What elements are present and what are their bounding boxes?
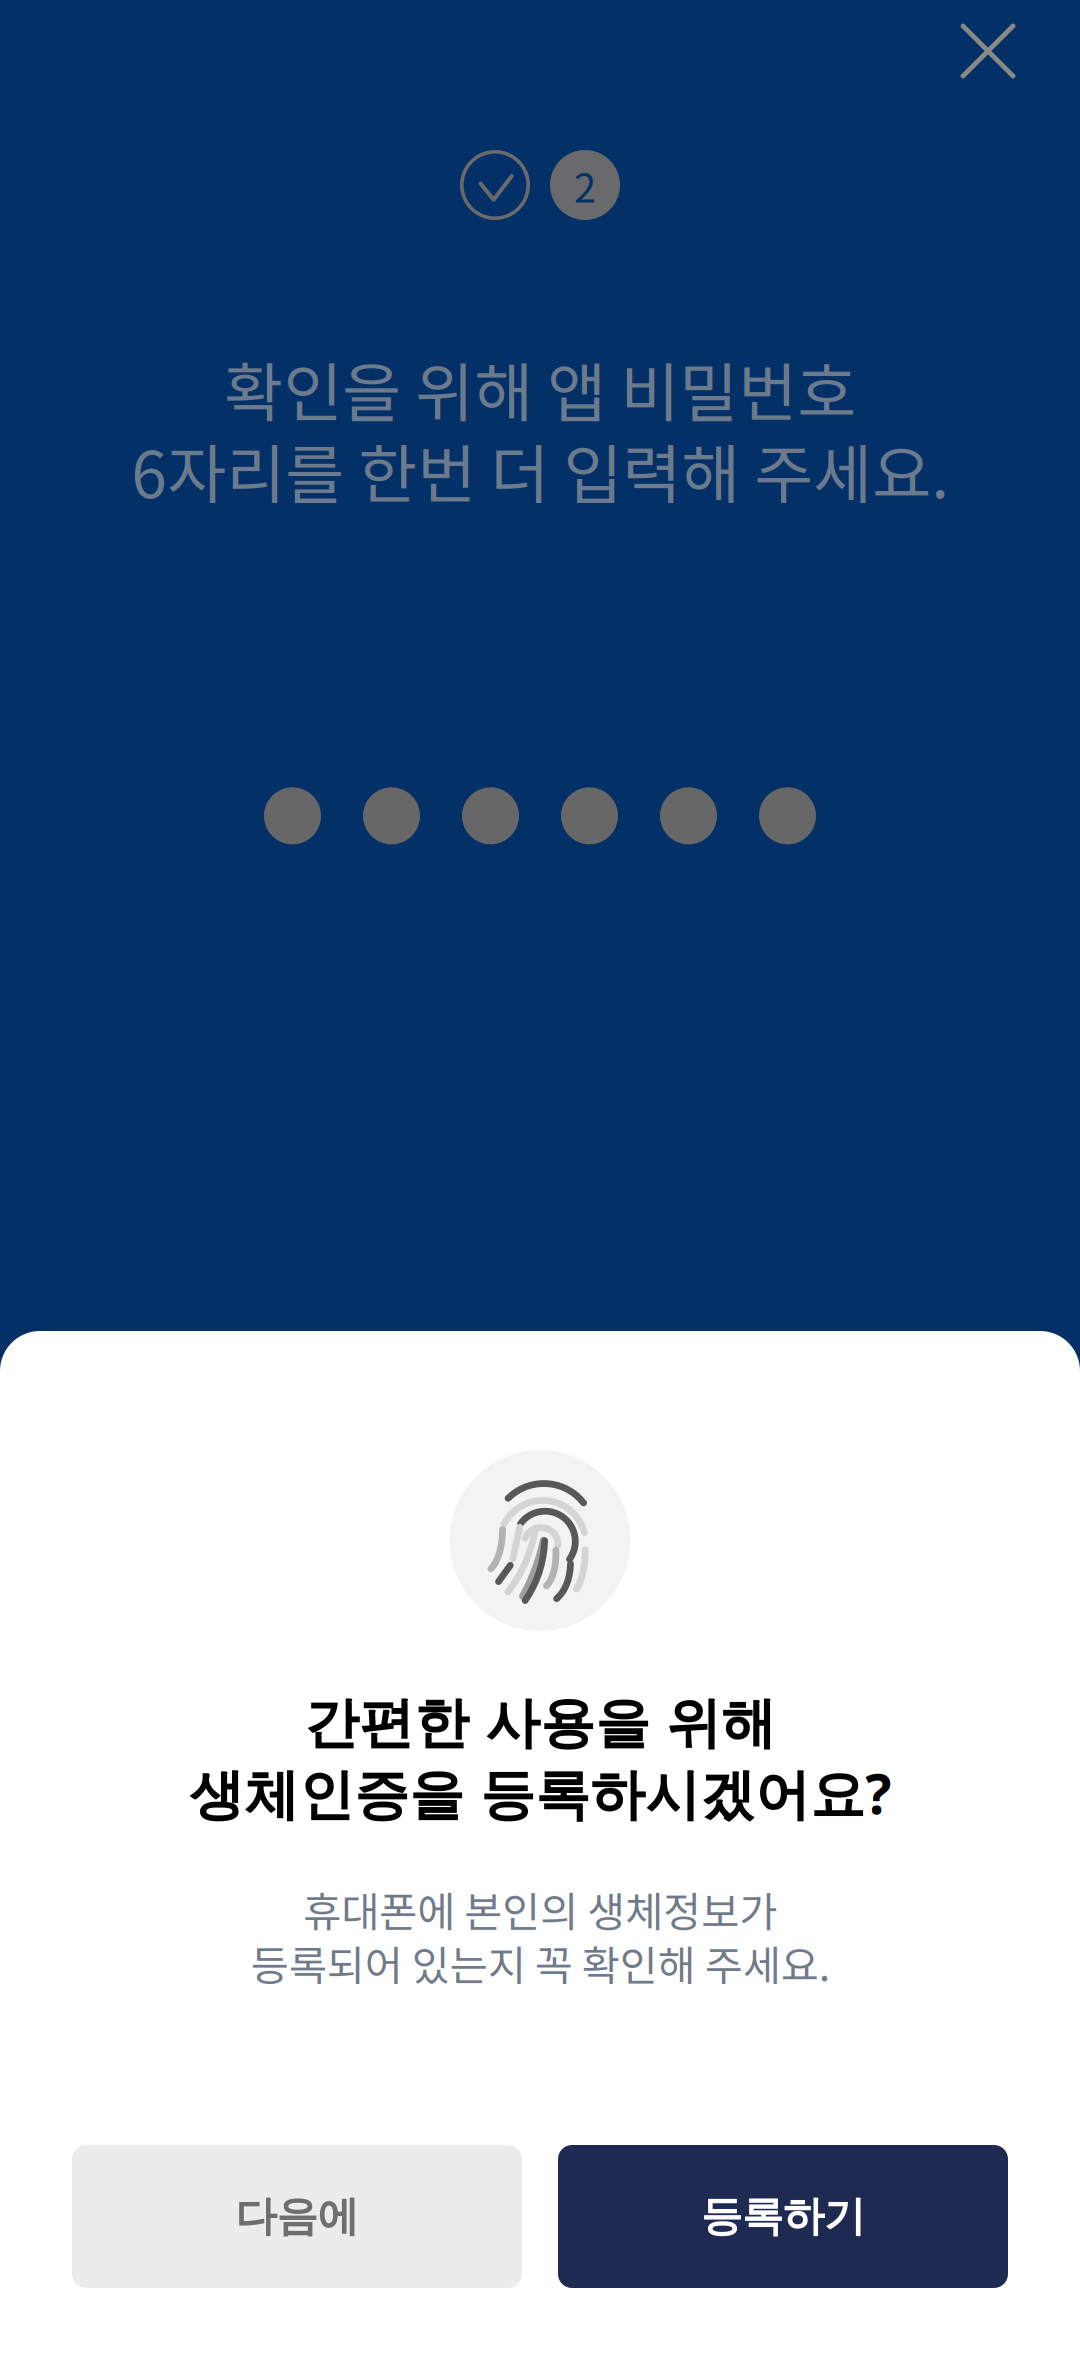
button[interactable]: 닫기 (936, 0, 1040, 103)
staticText: 다음에 (235, 2190, 358, 2243)
staticText: 휴대폰에 본인의 생체정보가 등록되어 있는지 꼭 확인해 주세요. (250, 1879, 829, 1993)
button[interactable]: 다음에 (72, 2145, 522, 2288)
staticText: 2 (574, 156, 596, 214)
staticText: 간편한 사용을 위해 생체인증을 등록하시겠어요? (189, 1689, 891, 1830)
staticText: 확인을 위해 앱 비밀번호 6자리를 한번 더 입력해 주세요. (131, 342, 949, 516)
staticText: 등록하기 (701, 2190, 865, 2243)
button[interactable]: 등록하기 (558, 2145, 1008, 2288)
